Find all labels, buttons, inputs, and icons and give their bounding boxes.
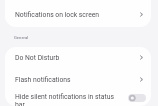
staticText: Flash notifications <box>15 76 71 84</box>
button[interactable]: Flash notifications <box>5 68 151 91</box>
staticText: Hide silent notifications in status bar <box>15 93 123 106</box>
button[interactable]: Do Not Disturb <box>5 47 151 68</box>
button[interactable]: Hide silent notifications in status bar <box>5 91 151 106</box>
staticText: Do Not Disturb <box>15 54 60 62</box>
staticText: General <box>14 35 29 40</box>
staticText: Notifications on lock screen <box>15 11 100 19</box>
button[interactable]: Hide silent notifications in status bar … <box>128 94 146 102</box>
button[interactable]: Notifications on lock screen <box>5 0 151 27</box>
